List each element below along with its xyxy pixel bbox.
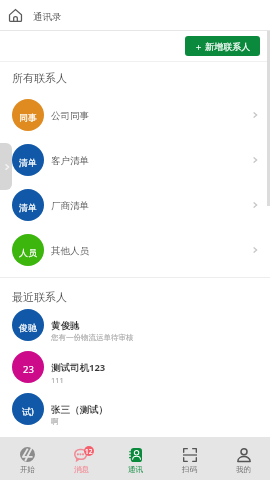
button[interactable]: 开始 xyxy=(0,437,54,480)
staticText: 清单 xyxy=(19,157,37,168)
staticText: 试) xyxy=(22,405,34,417)
staticText: 客户清单 xyxy=(51,155,248,167)
button[interactable]: 同事 xyxy=(0,92,270,137)
staticText: 公司同事 xyxy=(51,110,248,122)
staticText: 我的 xyxy=(236,465,251,474)
button[interactable]: 试) xyxy=(0,388,270,430)
staticText: 通讯录 xyxy=(33,11,62,23)
button[interactable]: 扫码 xyxy=(162,437,216,480)
button[interactable]: 23 xyxy=(0,346,270,388)
staticText: 消息 xyxy=(74,465,89,474)
staticText: 其他人员 xyxy=(51,245,248,257)
staticText: 俊驰 xyxy=(19,322,37,333)
staticText: 通讯 xyxy=(128,465,143,474)
staticText: 12 xyxy=(85,447,93,456)
staticText: 人员 xyxy=(19,247,37,258)
staticText: 张三（测试） xyxy=(51,404,108,416)
button[interactable]: 俊驰 xyxy=(0,304,270,346)
button[interactable]: 通讯 xyxy=(108,437,162,480)
staticText: 23 xyxy=(23,363,34,376)
staticText: 啊 xyxy=(51,417,59,426)
staticText: 您有一份物流运单待审核 xyxy=(51,333,134,342)
button[interactable]: Open drawer xyxy=(0,143,12,190)
staticText: 所有联系人 xyxy=(12,71,67,85)
staticText: 黄俊驰 xyxy=(51,320,80,332)
button[interactable]: 12 xyxy=(54,437,108,480)
staticText: 测试司机123 xyxy=(51,361,106,374)
button[interactable]: Home xyxy=(9,6,27,24)
button[interactable]: 我的 xyxy=(216,437,270,480)
staticText: 最近联系人 xyxy=(12,290,67,304)
button[interactable]: 人员 xyxy=(0,227,270,272)
staticText: 扫码 xyxy=(182,465,197,474)
button[interactable]: 清单 xyxy=(0,182,270,227)
staticText: 开始 xyxy=(20,465,35,474)
button[interactable]: 清单 xyxy=(0,137,270,182)
staticText: 厂商清单 xyxy=(51,200,248,212)
staticText: ＋ 新增联系人 xyxy=(194,40,251,52)
button[interactable]: ＋ 新增联系人 xyxy=(185,36,260,56)
staticText: 清单 xyxy=(19,202,37,213)
staticText: 111 xyxy=(51,375,64,385)
staticText: 同事 xyxy=(19,112,37,123)
